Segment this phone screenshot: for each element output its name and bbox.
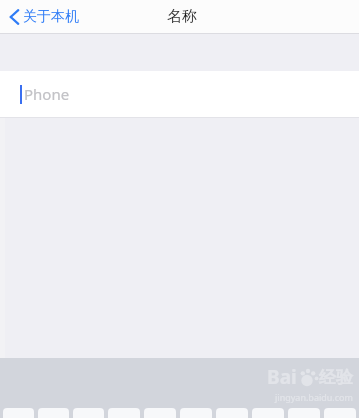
button[interactable]: Key: [108, 408, 140, 418]
button[interactable]: Key: [180, 408, 212, 418]
button[interactable]: Key: [144, 408, 176, 418]
button[interactable]: Key: [73, 408, 104, 418]
button[interactable]: Key: [216, 408, 248, 418]
button[interactable]: Key: [3, 408, 34, 418]
button[interactable]: Key: [252, 408, 284, 418]
button[interactable]: Key: [38, 408, 69, 418]
staticText: 名称: [167, 7, 197, 26]
button[interactable]: Key: [324, 408, 356, 418]
button[interactable]: Phone: [0, 71, 359, 117]
staticText: jingyan.baidu.com: [275, 391, 353, 403]
button[interactable]: Key: [288, 408, 320, 418]
button[interactable]: 关于本机: [0, 0, 87, 33]
staticText: Bai: [267, 364, 297, 390]
staticText: 关于本机: [23, 8, 79, 26]
staticText: 经验: [319, 367, 353, 388]
staticText: Phone: [24, 84, 70, 104]
